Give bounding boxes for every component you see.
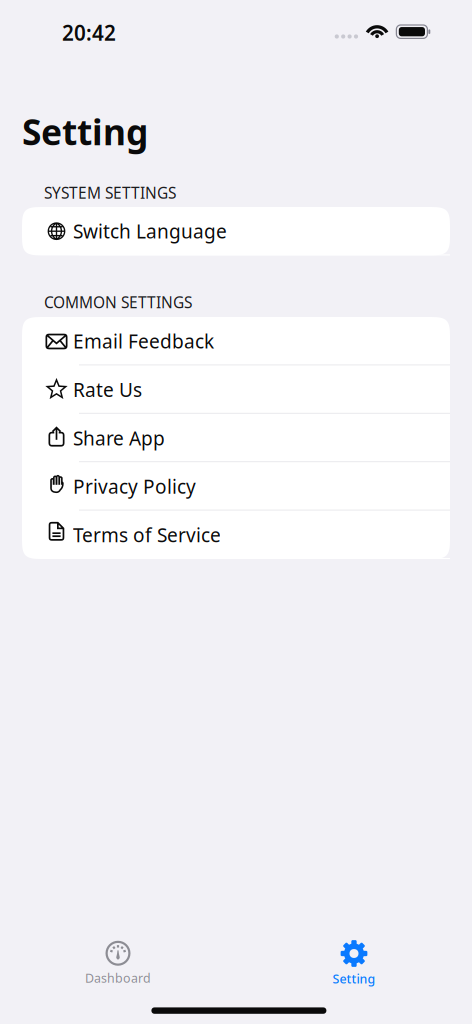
staticText: Share App	[73, 425, 165, 451]
button[interactable]: Switch Language	[22, 207, 450, 255]
button[interactable]: Share App	[22, 414, 450, 462]
staticText: Email Feedback	[73, 328, 214, 354]
staticText: Dashboard	[85, 970, 151, 986]
button[interactable]: Setting	[236, 940, 472, 987]
staticText: Terms of Service	[73, 522, 221, 547]
staticText: Rate Us	[73, 377, 142, 402]
button[interactable]: Email Feedback	[22, 317, 450, 365]
staticText: Setting	[22, 108, 148, 155]
button[interactable]: Terms of Service	[22, 511, 450, 559]
button[interactable]: Privacy Policy	[22, 462, 450, 511]
button[interactable]: Dashboard	[0, 941, 236, 986]
button[interactable]: Rate Us	[22, 365, 450, 414]
staticText: 20:42	[62, 19, 116, 46]
staticText: Setting	[332, 970, 375, 987]
staticText: SYSTEM SETTINGS	[44, 182, 176, 203]
staticText: COMMON SETTINGS	[44, 292, 192, 312]
staticText: Switch Language	[73, 218, 227, 244]
staticText: Privacy Policy	[73, 474, 196, 499]
